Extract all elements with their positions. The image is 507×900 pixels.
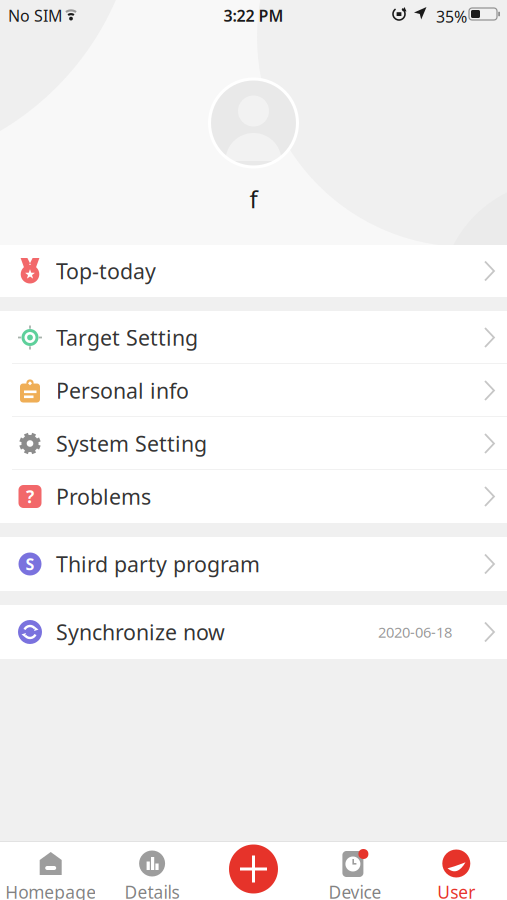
- staticText: No SIM: [8, 5, 63, 26]
- staticText: System Setting: [56, 429, 207, 458]
- staticText: ?: [26, 485, 34, 508]
- staticText: 2020-06-18: [378, 622, 452, 642]
- staticText: Top-today: [56, 257, 156, 285]
- button[interactable]: Personal info: [0, 364, 507, 417]
- staticText: Target Setting: [56, 323, 198, 352]
- staticText: Device: [328, 880, 381, 900]
- staticText: Personal info: [56, 376, 189, 405]
- button[interactable]: Device: [304, 842, 406, 900]
- staticText: Details: [125, 880, 180, 900]
- button[interactable]: Synchronize now: [0, 605, 507, 659]
- button[interactable]: S: [0, 537, 507, 591]
- staticText: Synchronize now: [56, 618, 225, 646]
- staticText: Third party program: [56, 550, 260, 578]
- button[interactable]: Top-today: [0, 245, 507, 297]
- staticText: 3:22 PM: [223, 5, 283, 26]
- staticText: 35%: [436, 6, 467, 27]
- staticText: User: [437, 880, 475, 900]
- button[interactable]: Target Setting: [0, 311, 507, 364]
- button[interactable]: Homepage: [0, 842, 101, 900]
- staticText: Homepage: [5, 880, 96, 900]
- button[interactable]: Add: [203, 842, 304, 900]
- button[interactable]: User: [406, 842, 507, 900]
- button[interactable]: ?: [0, 470, 507, 523]
- staticText: f: [249, 183, 257, 215]
- staticText: Problems: [56, 482, 151, 511]
- button[interactable]: Details: [101, 842, 203, 900]
- button[interactable]: System Setting: [0, 417, 507, 470]
- staticText: S: [25, 553, 34, 575]
